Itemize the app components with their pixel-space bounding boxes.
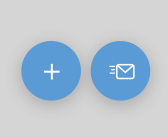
button[interactable]: Mail [91,41,150,101]
button[interactable]: Add [21,41,81,101]
